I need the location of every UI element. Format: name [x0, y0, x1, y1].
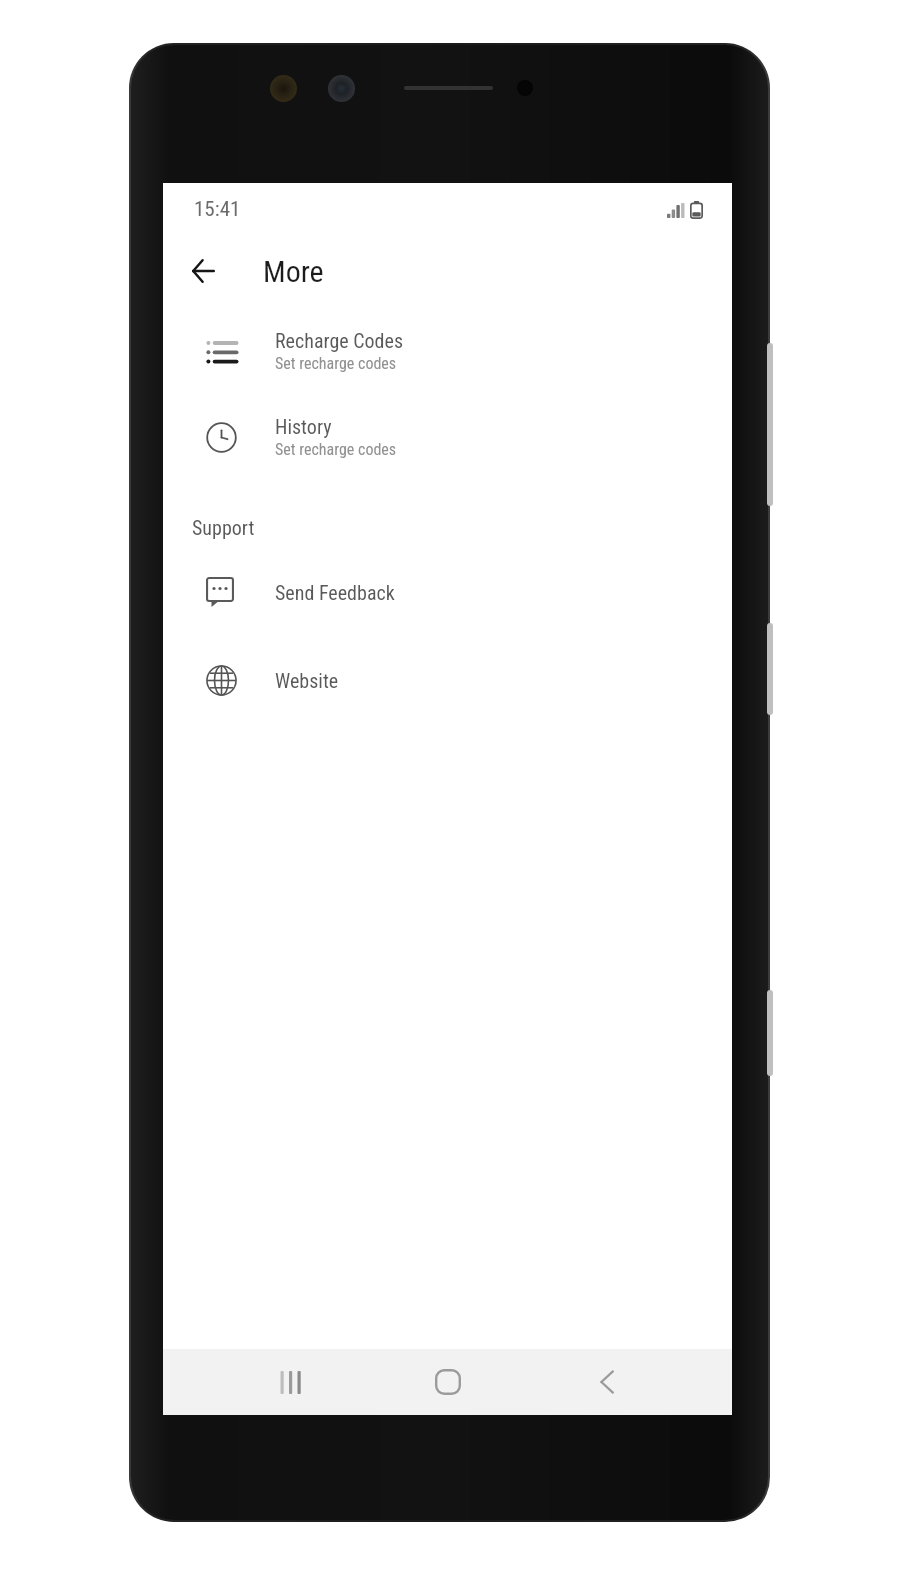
staticText: Set recharge codes [275, 354, 397, 373]
button[interactable]: Recharge Codes [163, 315, 732, 387]
button[interactable]: Send Feedback [163, 556, 732, 628]
staticText: History [275, 415, 332, 438]
staticText: More [263, 254, 324, 289]
button[interactable]: History [163, 401, 732, 473]
staticText: 15:41 [194, 197, 241, 222]
button[interactable]: Recents [210, 1349, 368, 1415]
staticText: Recharge Codes [275, 329, 403, 352]
button[interactable]: Back [174, 242, 232, 300]
staticText: Support [192, 516, 255, 539]
staticText: Send Feedback [275, 581, 395, 604]
button[interactable]: Home [368, 1349, 527, 1415]
staticText: Set recharge codes [275, 440, 397, 459]
button[interactable]: Website [163, 644, 732, 716]
button[interactable]: Back [527, 1349, 686, 1415]
staticText: Website [275, 669, 339, 692]
